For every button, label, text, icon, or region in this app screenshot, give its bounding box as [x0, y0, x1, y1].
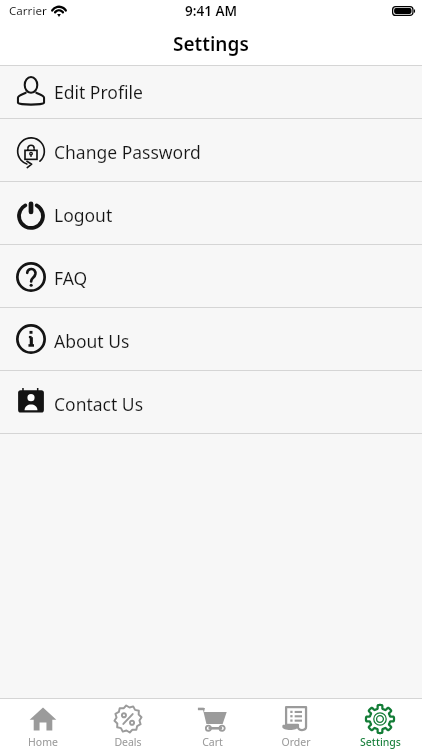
button[interactable]: Edit Profile — [0, 66, 422, 118]
staticText: Home — [28, 735, 58, 749]
button[interactable]: Contact Us — [0, 371, 422, 433]
staticText: Cart — [202, 735, 223, 749]
staticText: Contact Us — [54, 392, 144, 416]
staticText: 9:41 AM — [185, 2, 238, 20]
staticText: Change Password — [54, 140, 201, 164]
button[interactable]: Cart — [170, 699, 254, 750]
button[interactable]: Settings — [338, 699, 422, 750]
staticText: Order — [281, 735, 311, 749]
staticText: Settings — [360, 735, 401, 749]
button[interactable]: Change Password — [0, 119, 422, 181]
staticText: Settings — [173, 31, 249, 57]
button[interactable]: Logout — [0, 182, 422, 244]
staticText: About Us — [54, 329, 130, 353]
staticText: FAQ — [54, 266, 88, 290]
button[interactable]: Deals — [85, 699, 170, 750]
button[interactable]: About Us — [0, 308, 422, 370]
button[interactable]: Order — [254, 699, 338, 750]
button[interactable]: FAQ — [0, 245, 422, 307]
staticText: Edit Profile — [54, 80, 143, 104]
staticText: Carrier — [9, 3, 47, 19]
button[interactable]: Home — [0, 699, 85, 750]
staticText: Deals — [114, 735, 142, 749]
staticText: Logout — [54, 203, 113, 227]
